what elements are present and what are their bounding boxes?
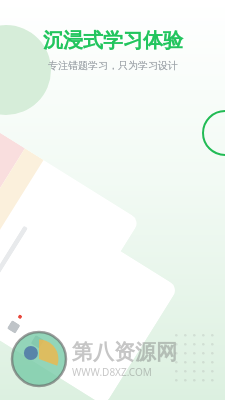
- button[interactable]: Dictionary: [0, 134, 20, 267]
- staticText: 沉浸式学习体验: [43, 28, 183, 53]
- staticText: 第八资源网: [72, 339, 177, 365]
- button[interactable]: Book: [0, 98, 140, 348]
- button[interactable]: [0, 208, 179, 400]
- staticText: WWW.D8XZ.COM: [72, 365, 152, 379]
- staticText: 专注错题学习，只为学习设计: [48, 59, 178, 72]
